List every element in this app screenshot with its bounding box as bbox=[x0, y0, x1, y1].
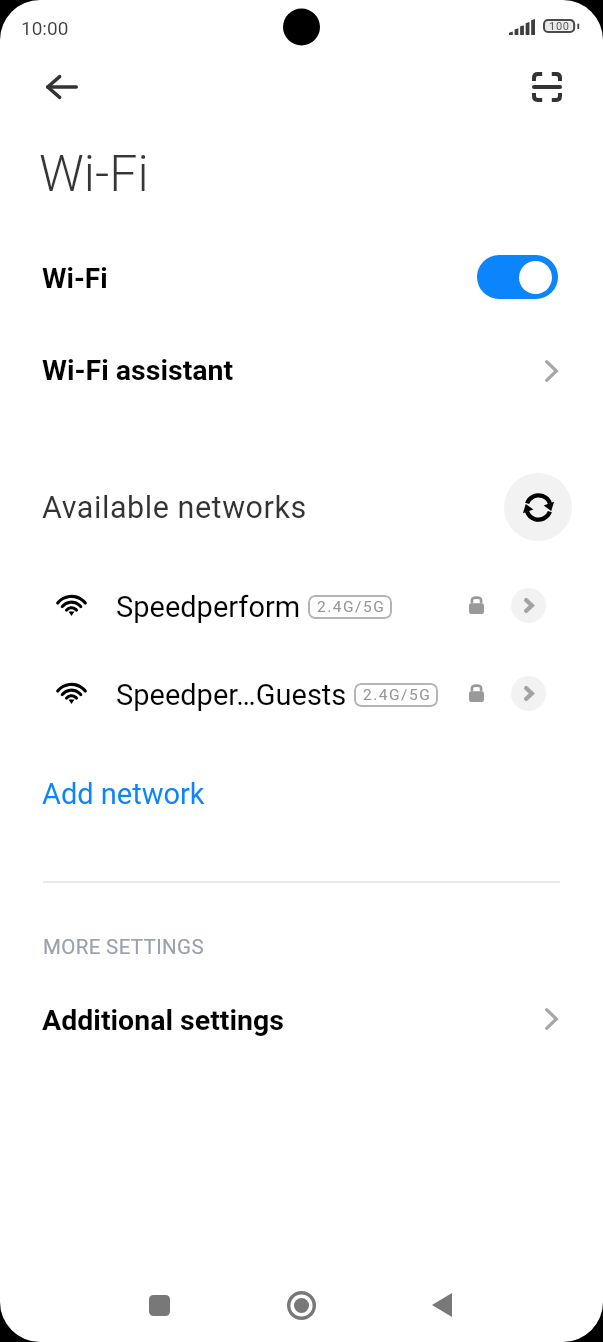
button[interactable]: Wi-Fi bbox=[0, 248, 603, 312]
button[interactable]: Wi-Fi assistant bbox=[0, 340, 603, 404]
staticText: Wi-Fi bbox=[39, 145, 149, 204]
staticText: 2.4G/5G bbox=[317, 598, 386, 616]
button[interactable]: Back bbox=[412, 1275, 472, 1335]
button[interactable]: Network details bbox=[511, 676, 546, 711]
button[interactable]: Scan QR code bbox=[520, 60, 574, 114]
staticText: MORE SETTINGS bbox=[43, 935, 204, 959]
button[interactable]: Recents bbox=[129, 1275, 189, 1335]
staticText: Wi-Fi bbox=[42, 262, 108, 295]
staticText: Speedperform bbox=[116, 590, 301, 624]
button[interactable]: Back bbox=[36, 61, 88, 113]
button[interactable]: Home bbox=[271, 1275, 331, 1335]
staticText: 100 bbox=[549, 20, 570, 33]
button[interactable]: Refresh networks bbox=[504, 473, 572, 541]
button[interactable]: Speedper…Guests bbox=[0, 672, 603, 738]
button[interactable]: Additional settings bbox=[0, 992, 603, 1052]
staticText: Add network bbox=[42, 777, 205, 811]
staticText: Additional settings bbox=[42, 1004, 284, 1037]
staticText: 2.4G/5G bbox=[363, 686, 432, 704]
staticText: Available networks bbox=[42, 490, 307, 526]
button[interactable]: Speedperform bbox=[0, 584, 603, 650]
staticText: Wi-Fi assistant bbox=[42, 354, 234, 387]
staticText: Speedper…Guests bbox=[116, 678, 347, 712]
button[interactable]: Network details bbox=[511, 588, 546, 623]
button[interactable]: Add network bbox=[0, 766, 603, 822]
staticText: 10:00 bbox=[21, 17, 69, 39]
